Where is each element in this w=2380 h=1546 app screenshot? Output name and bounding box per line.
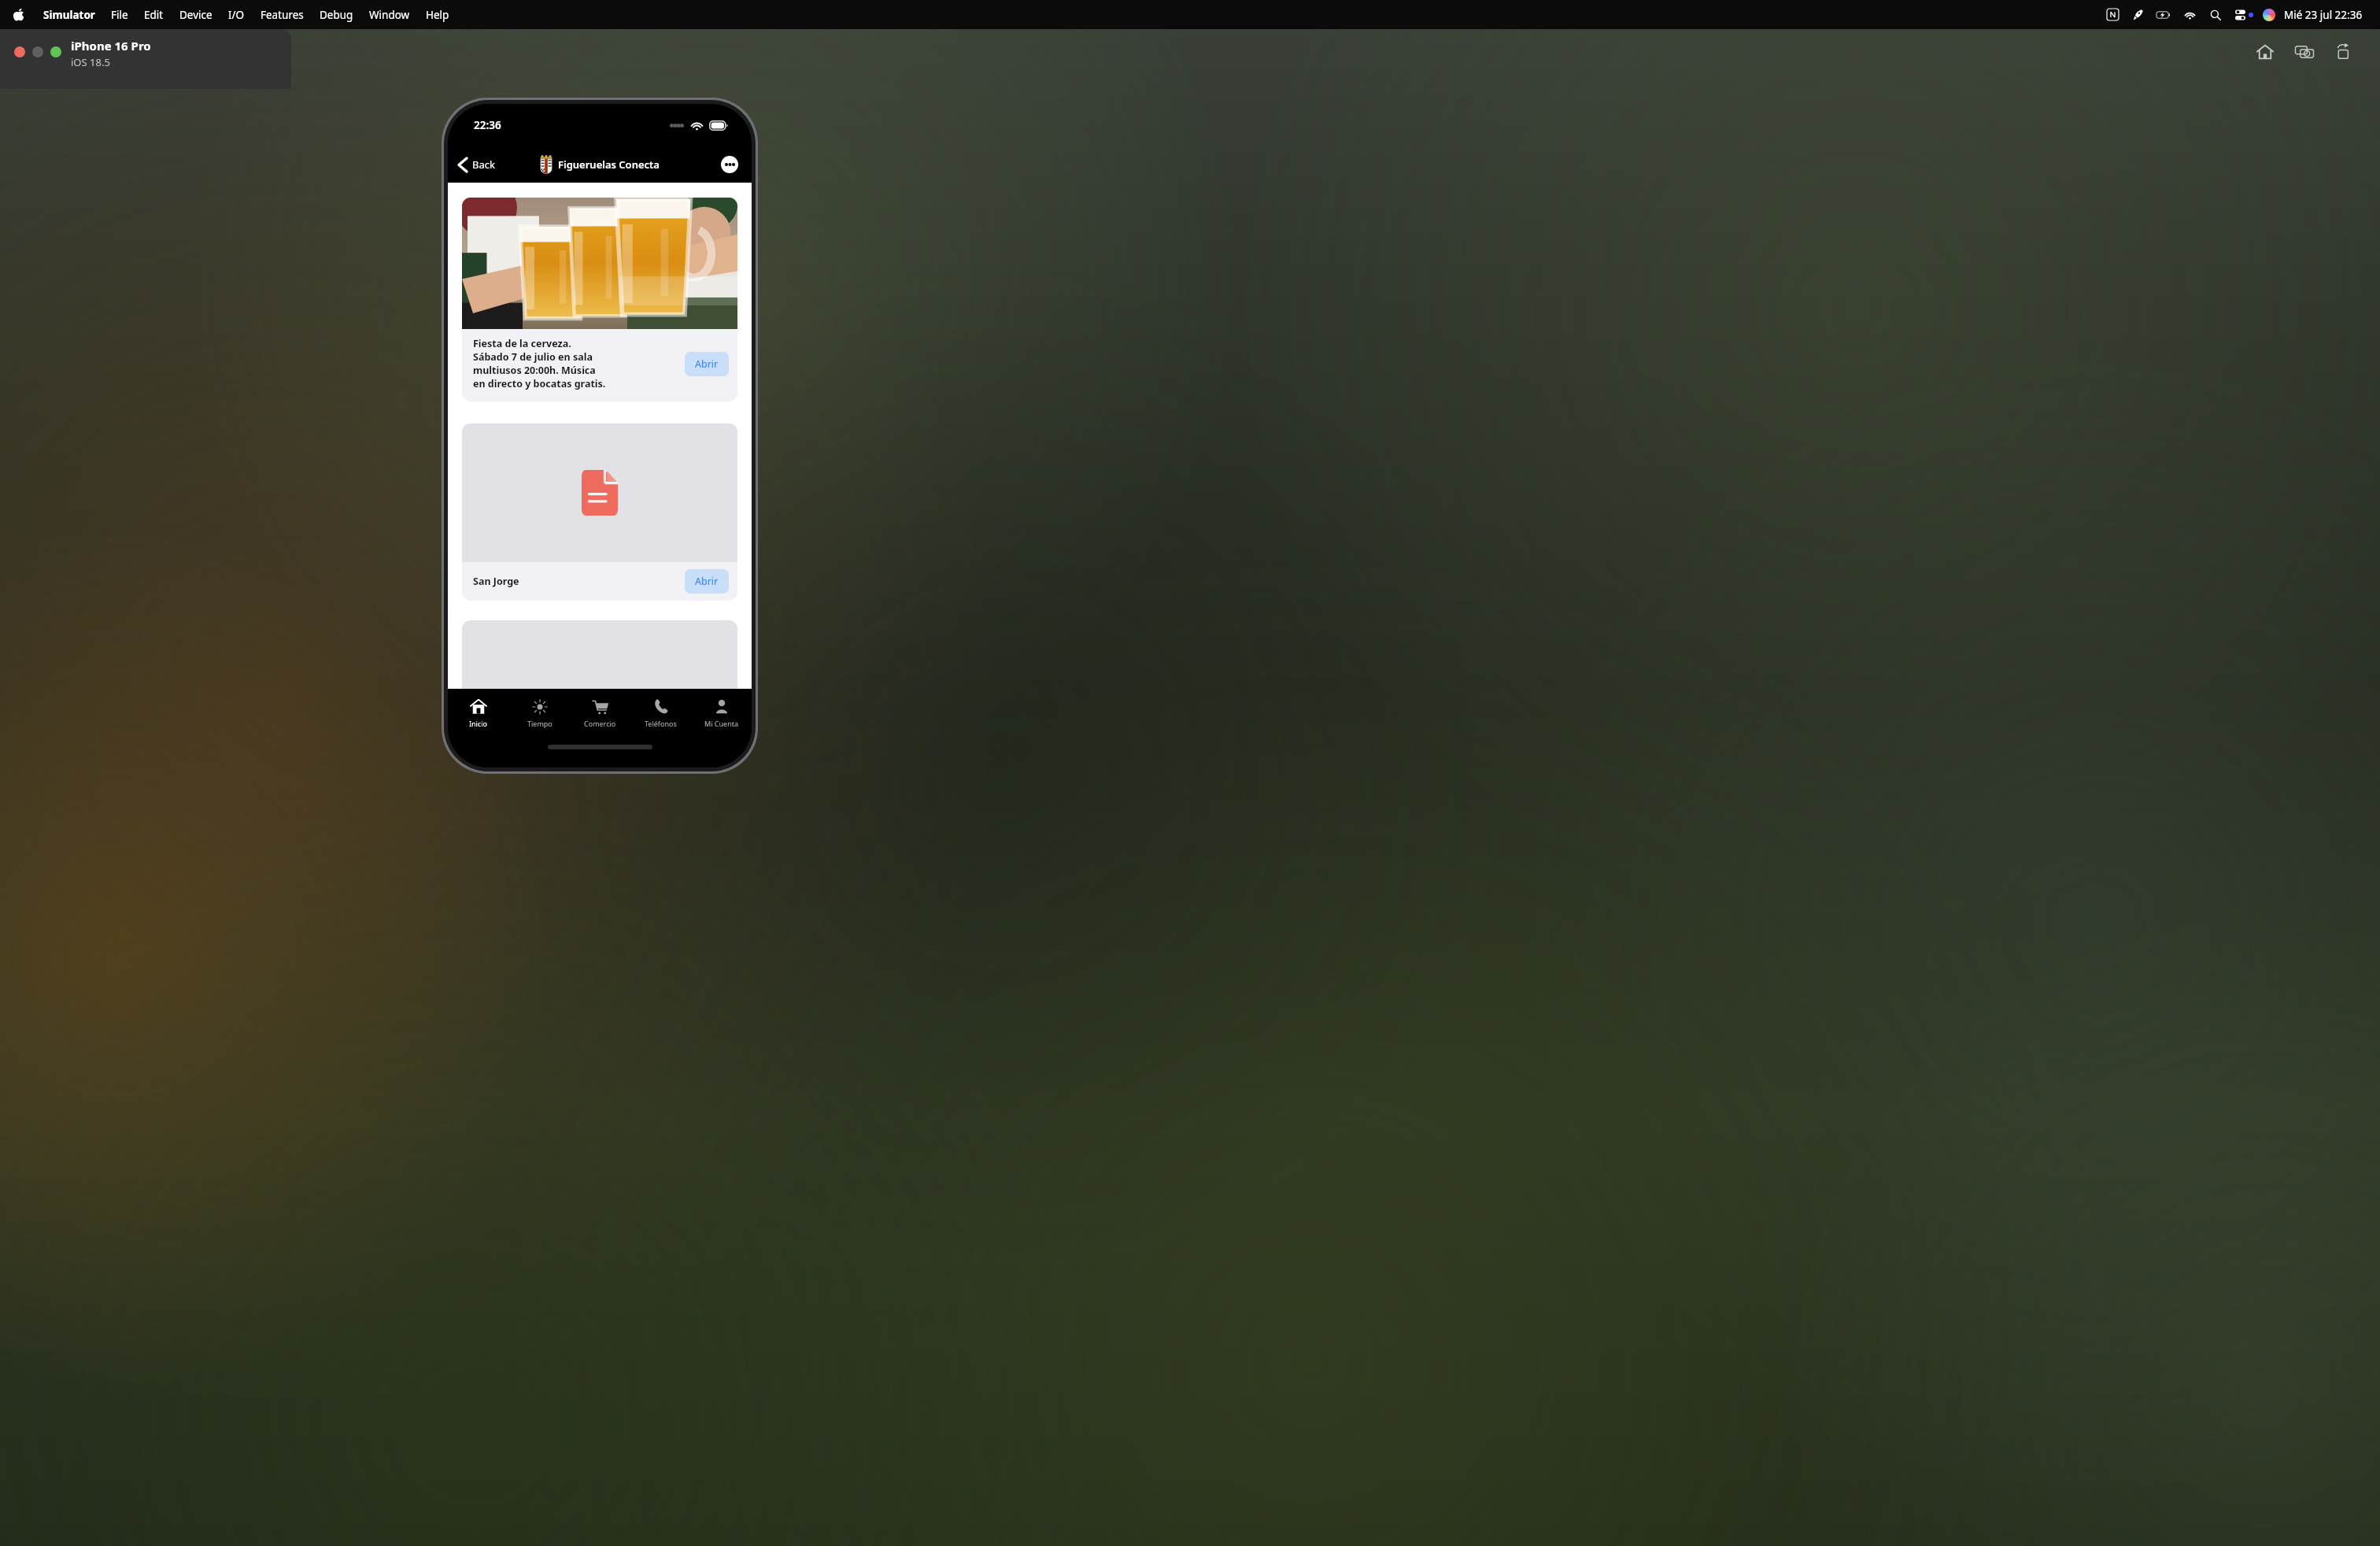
staticText: Mi Cuenta bbox=[704, 719, 739, 728]
staticText: Debug bbox=[320, 8, 353, 22]
button[interactable]: Notion bbox=[2106, 8, 2119, 21]
button[interactable]: Window bbox=[361, 0, 418, 29]
button[interactable]: Share bbox=[2331, 39, 2356, 64]
staticText: Device bbox=[179, 8, 213, 22]
button[interactable]: Wi-Fi bbox=[2183, 8, 2197, 21]
button[interactable]: Close bbox=[14, 46, 25, 57]
staticText: File bbox=[111, 8, 128, 22]
button[interactable]: Help bbox=[418, 0, 457, 29]
button[interactable]: Launcher bbox=[2131, 8, 2145, 21]
staticText: Edit bbox=[144, 8, 164, 22]
button[interactable]: Screenshot bbox=[2292, 39, 2316, 64]
button[interactable]: San Jorge bbox=[462, 423, 737, 601]
staticText: Mié 23 jul 22:36 bbox=[2284, 8, 2363, 22]
staticText: Help bbox=[426, 8, 449, 22]
button[interactable]: Home bbox=[2252, 39, 2277, 64]
button[interactable]: File bbox=[103, 0, 136, 29]
button[interactable]: Control Centre bbox=[2234, 8, 2247, 21]
staticText: Teléfonos bbox=[645, 719, 677, 728]
button[interactable]: Teléfonos bbox=[630, 689, 691, 737]
button[interactable] bbox=[462, 620, 737, 689]
button[interactable]: Features bbox=[253, 0, 312, 29]
button[interactable]: Edit bbox=[136, 0, 172, 29]
button[interactable]: Maximise bbox=[50, 46, 61, 57]
staticText: Features bbox=[261, 8, 304, 22]
staticText: Back bbox=[472, 157, 495, 172]
staticText: Fiesta de la cerveza. Sábado 7 de julio … bbox=[473, 337, 606, 390]
staticText: Tiempo bbox=[527, 719, 552, 728]
button[interactable]: Minimise bbox=[32, 46, 43, 57]
staticText: Comercio bbox=[584, 719, 616, 728]
button[interactable]: Fiesta de la cerveza. Sábado 7 de julio … bbox=[462, 198, 737, 401]
button[interactable]: Tiempo bbox=[509, 689, 570, 737]
staticText: iOS 18.5 bbox=[71, 55, 110, 69]
button[interactable]: Abrir bbox=[685, 569, 729, 594]
staticText: Abrir bbox=[695, 357, 719, 371]
staticText: iPhone 16 Pro bbox=[71, 38, 151, 54]
staticText: I/O bbox=[228, 8, 245, 22]
button[interactable]: Abrir bbox=[685, 352, 729, 376]
staticText: Window bbox=[369, 8, 410, 22]
button[interactable]: Inicio bbox=[448, 689, 509, 737]
button[interactable]: Account bbox=[2262, 8, 2275, 21]
button[interactable]: Debug bbox=[312, 0, 361, 29]
button[interactable]: I/O bbox=[220, 0, 253, 29]
staticText: Inicio bbox=[469, 719, 488, 728]
staticText: 22:36 bbox=[474, 118, 501, 132]
staticText: Figueruelas Conecta bbox=[558, 157, 660, 172]
button[interactable]: Mi Cuenta bbox=[691, 689, 752, 737]
button[interactable]: Device bbox=[172, 0, 220, 29]
staticText: Abrir bbox=[695, 575, 719, 588]
staticText: San Jorge bbox=[473, 575, 519, 588]
button[interactable]: Battery bbox=[2156, 7, 2171, 22]
button[interactable]: Back bbox=[454, 153, 500, 176]
button[interactable]: Spotlight search bbox=[2208, 8, 2222, 21]
staticText: Simulator bbox=[43, 8, 95, 22]
button[interactable]: Simulator bbox=[35, 0, 103, 29]
button[interactable]: Comercio bbox=[570, 689, 630, 737]
button[interactable]: More options bbox=[721, 156, 738, 173]
